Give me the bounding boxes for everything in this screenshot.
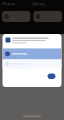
button[interactable] xyxy=(2,59,61,68)
staticText: Photos xyxy=(2,1,15,6)
button[interactable] xyxy=(2,48,61,59)
staticText: Library xyxy=(32,1,45,6)
button[interactable]: Send xyxy=(47,73,55,79)
button[interactable]: Search xyxy=(2,11,30,22)
button[interactable]: Browse xyxy=(33,11,62,22)
